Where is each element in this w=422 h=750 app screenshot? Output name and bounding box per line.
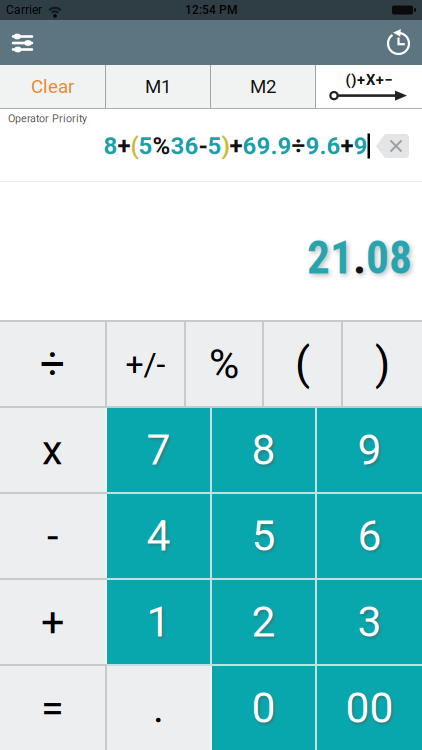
button[interactable]: ÷ — [0, 322, 105, 406]
staticText: 00 — [345, 683, 393, 733]
staticText: = — [41, 684, 64, 732]
button[interactable]: 3 — [317, 580, 422, 664]
staticText: 5 — [251, 511, 275, 561]
button[interactable]: 2 — [212, 580, 315, 664]
staticText: 5 — [207, 132, 221, 160]
staticText: 0 — [251, 683, 275, 733]
staticText: Clear — [31, 76, 74, 97]
staticText: x — [42, 426, 63, 474]
staticText: - — [47, 512, 58, 560]
button[interactable]: Operator Priority — [316, 65, 422, 108]
button[interactable]: Settings — [0, 20, 45, 65]
staticText: Carrier — [6, 3, 42, 17]
button[interactable]: 4 — [107, 494, 210, 578]
button[interactable]: History — [377, 20, 422, 65]
button[interactable]: + — [0, 580, 105, 664]
staticText: 9 — [353, 132, 367, 160]
button[interactable]: . — [107, 666, 210, 750]
button[interactable]: 00 — [317, 666, 422, 750]
button[interactable]: - — [0, 494, 105, 578]
button[interactable]: ) — [343, 322, 422, 406]
staticText: ( — [130, 132, 138, 160]
button[interactable]: Clear — [0, 65, 105, 108]
staticText: M2 — [250, 76, 276, 97]
button[interactable]: 1 — [107, 580, 210, 664]
button[interactable]: M2 — [211, 65, 315, 108]
staticText: 69.9 — [242, 132, 291, 160]
button[interactable]: % — [186, 322, 262, 406]
staticText: 8 — [251, 425, 275, 475]
staticText: % — [152, 132, 170, 160]
staticText: 7 — [146, 425, 170, 475]
staticText: 3 — [357, 597, 381, 647]
staticText: 6 — [357, 511, 381, 561]
staticText: + — [229, 132, 242, 160]
button[interactable]: Delete — [370, 133, 409, 158]
staticText: 4 — [146, 511, 170, 561]
staticText: 8 — [103, 132, 117, 160]
staticText: Operator Priority — [8, 112, 87, 125]
staticText: . — [153, 684, 164, 732]
staticText: 2 — [251, 597, 275, 647]
button[interactable]: x — [0, 408, 105, 492]
staticText: 36 — [170, 132, 198, 160]
staticText: M1 — [145, 76, 171, 97]
button[interactable]: 5 — [212, 494, 315, 578]
staticText: +/- — [125, 345, 165, 383]
staticText: 21 — [307, 231, 353, 284]
staticText: ()+X+− — [345, 71, 392, 89]
staticText: - — [198, 132, 207, 160]
staticText: 9.6 — [305, 132, 340, 160]
staticText: + — [340, 132, 353, 160]
staticText: 5 — [138, 132, 152, 160]
staticText: ) — [375, 338, 390, 390]
staticText: ÷ — [291, 132, 305, 160]
staticText: ) — [221, 132, 229, 160]
staticText: 08 — [366, 231, 412, 284]
staticText: ( — [295, 338, 310, 390]
staticText: ÷ — [40, 338, 65, 390]
button[interactable]: M1 — [106, 65, 210, 108]
staticText: 1 — [146, 597, 170, 647]
staticText: 12:54 PM — [185, 3, 237, 17]
button[interactable]: +/- — [107, 322, 184, 406]
staticText: + — [117, 132, 130, 160]
button[interactable]: = — [0, 666, 105, 750]
button[interactable]: ( — [264, 322, 341, 406]
button[interactable]: 9 — [317, 408, 422, 492]
staticText: % — [209, 340, 239, 388]
button[interactable]: 7 — [107, 408, 210, 492]
staticText: + — [41, 598, 64, 646]
button[interactable]: 0 — [212, 666, 315, 750]
staticText: . — [353, 231, 366, 284]
staticText: 9 — [357, 425, 381, 475]
button[interactable]: 8 — [212, 408, 315, 492]
button[interactable]: 6 — [317, 494, 422, 578]
